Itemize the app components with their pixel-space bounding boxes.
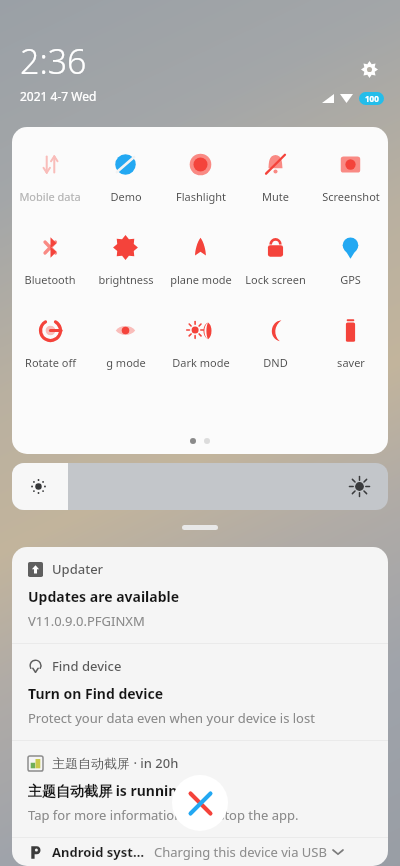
button[interactable]: brightness [88, 232, 163, 289]
button[interactable]: 主题自动截屏 · in 20h [12, 741, 388, 837]
staticText: Find device [52, 657, 122, 675]
staticText: Screenshot [322, 189, 380, 204]
button[interactable]: saver [313, 315, 388, 372]
button[interactable]: Screenshot [313, 149, 388, 206]
staticText: Protect your data even when your device … [28, 709, 315, 727]
button[interactable]: g mode [88, 315, 163, 372]
staticText: 2021 4-7 Wed [20, 88, 97, 104]
button[interactable]: Rotate off [12, 315, 88, 372]
staticText: GPS [340, 272, 361, 287]
button[interactable]: Dark mode [163, 315, 238, 372]
staticText: Updates are available [28, 587, 180, 606]
staticText: g mode [106, 355, 146, 370]
staticText: Rotate off [25, 355, 76, 370]
staticText: Flashlight [176, 189, 226, 204]
staticText: Tap for more information or to stop the … [28, 806, 299, 824]
button[interactable]: DND [238, 315, 313, 372]
staticText: Android syst… [52, 843, 145, 861]
staticText: saver [337, 355, 365, 370]
staticText: Bluetooth [24, 272, 76, 287]
staticText: 主题自动截屏 is running [28, 781, 187, 800]
staticText: Updater [52, 560, 104, 578]
staticText: V11.0.9.0.PFGINXM [28, 612, 145, 630]
staticText: Demo [110, 189, 142, 204]
staticText: 2:36 [20, 38, 87, 84]
button[interactable]: GPS [313, 232, 388, 289]
button[interactable]: Bluetooth [12, 232, 88, 289]
button[interactable]: Android syst… [12, 838, 388, 866]
button[interactable]: Brightness [12, 463, 388, 510]
staticText: Turn on Find device [28, 684, 164, 703]
button[interactable]: plane mode [163, 232, 238, 289]
button[interactable]: Mute [238, 149, 313, 206]
staticText: plane mode [170, 272, 232, 287]
button[interactable]: Lock screen [238, 232, 313, 289]
button[interactable]: Demo [88, 149, 163, 206]
button[interactable]: App shortcut [172, 775, 228, 831]
button[interactable]: Flashlight [163, 149, 238, 206]
staticText: Dark mode [172, 355, 230, 370]
staticText: 主题自动截屏 · in 20h [52, 754, 179, 772]
button[interactable]: Settings [352, 52, 386, 86]
staticText: brightness [98, 272, 154, 287]
staticText: Mobile data [19, 189, 81, 204]
button[interactable]: Mobile data [12, 149, 88, 206]
staticText: 100 [365, 93, 379, 104]
staticText: Charging this device via USB [154, 843, 327, 861]
staticText: Lock screen [245, 272, 306, 287]
staticText: DND [263, 355, 288, 370]
button[interactable]: Updater [12, 547, 388, 643]
staticText: Mute [262, 189, 289, 204]
button[interactable]: Find device [12, 644, 388, 740]
